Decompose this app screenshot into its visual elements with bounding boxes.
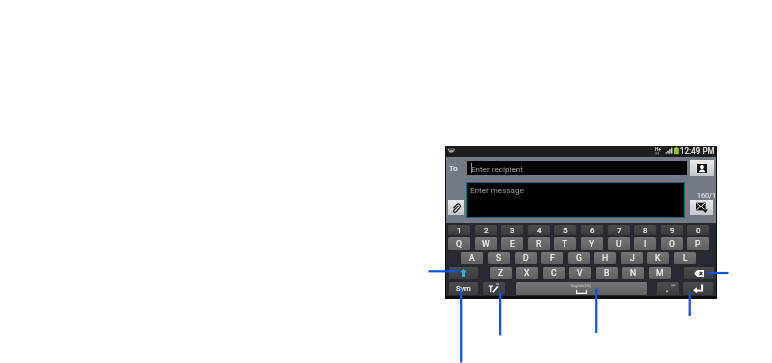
button[interactable]: R [528, 237, 550, 250]
button[interactable]: period [657, 282, 679, 295]
button[interactable]: 7 [608, 225, 630, 235]
button[interactable]: O [661, 237, 683, 250]
button[interactable]: G [568, 252, 590, 264]
staticText: I [644, 239, 647, 249]
button[interactable]: K [647, 252, 669, 264]
button[interactable]: Send [690, 200, 713, 215]
button[interactable]: N [622, 267, 644, 279]
button[interactable]: I [634, 237, 656, 250]
button[interactable]: Sym [449, 282, 478, 295]
button[interactable]: L [674, 252, 696, 264]
staticText: 12:49 PM [680, 145, 715, 156]
button[interactable]: C [543, 267, 565, 279]
staticText: C [551, 268, 557, 278]
button[interactable]: Shift [449, 267, 478, 279]
staticText: F [550, 253, 555, 263]
button[interactable] [466, 182, 685, 218]
button[interactable]: D [515, 252, 537, 264]
button[interactable]: H [594, 252, 616, 264]
button[interactable]: 6 [581, 225, 603, 235]
staticText: H [602, 253, 609, 263]
staticText: K [655, 253, 661, 263]
staticText: To [449, 164, 458, 173]
staticText: M [656, 268, 664, 278]
button[interactable]: Change input language [483, 282, 505, 295]
staticText: 8 [643, 226, 648, 235]
button[interactable]: Backspace [684, 267, 714, 279]
button[interactable]: X [516, 267, 538, 279]
button[interactable]: M [649, 267, 671, 279]
button[interactable]: 1 [448, 225, 470, 235]
staticText: 6 [590, 226, 595, 235]
staticText: E [510, 239, 515, 249]
button[interactable]: Contacts [690, 160, 714, 176]
staticText: Y [589, 239, 595, 249]
button[interactable]: P [687, 237, 709, 250]
button[interactable]: T [554, 237, 576, 250]
staticText: O [669, 239, 675, 249]
staticText: G [576, 253, 582, 263]
button[interactable]: E [501, 237, 523, 250]
button[interactable]: S [488, 252, 510, 264]
button[interactable]: Attach [448, 200, 464, 215]
staticText: T [562, 239, 568, 249]
staticText: X [524, 268, 530, 278]
button[interactable]: A [461, 252, 483, 264]
button[interactable]: U [608, 237, 630, 250]
staticText: V [577, 268, 583, 278]
staticText: 9 [670, 226, 675, 235]
staticText: J [630, 253, 635, 263]
staticText: A [469, 253, 475, 263]
staticText: Z [498, 268, 504, 278]
staticText: Q [456, 239, 462, 249]
button[interactable]: 0 [687, 225, 709, 235]
button[interactable]: Y [581, 237, 603, 250]
staticText: B [604, 268, 610, 278]
staticText: 2 [484, 226, 489, 235]
button[interactable]: W [475, 237, 497, 250]
staticText: 5 [563, 226, 568, 235]
button[interactable]: Q [448, 237, 470, 250]
staticText: 0 [696, 226, 701, 235]
button[interactable]: F [541, 252, 563, 264]
button[interactable]: Space [516, 282, 647, 295]
button[interactable]: 9 [661, 225, 683, 235]
button[interactable]: 5 [554, 225, 576, 235]
staticText: L [683, 253, 688, 263]
button[interactable]: 4 [528, 225, 550, 235]
staticText: 160/1 [697, 191, 717, 199]
staticText: Sym [456, 284, 471, 293]
staticText: 1 [457, 226, 462, 235]
staticText: N [630, 268, 637, 278]
staticText: 4 [537, 226, 542, 235]
button[interactable]: V [569, 267, 591, 279]
button[interactable]: 2 [475, 225, 497, 235]
staticText: P [695, 239, 701, 249]
button[interactable]: 3 [501, 225, 523, 235]
staticText: 3 [510, 226, 515, 235]
staticText: D [523, 253, 529, 263]
staticText: W [482, 239, 490, 249]
staticText: English(US) [571, 283, 592, 288]
staticText: S [496, 253, 502, 263]
staticText: U [616, 239, 622, 249]
staticText: Enter recipient [471, 164, 523, 173]
staticText: 7 [617, 226, 622, 235]
staticText: H+ [655, 147, 661, 152]
button[interactable] [467, 161, 687, 175]
button[interactable]: B [596, 267, 618, 279]
staticText: Enter message [470, 185, 524, 194]
button[interactable]: J [621, 252, 643, 264]
button[interactable]: 8 [634, 225, 656, 235]
button[interactable]: Z [490, 267, 512, 279]
button[interactable]: Enter [683, 282, 713, 295]
staticText: R [536, 239, 542, 249]
